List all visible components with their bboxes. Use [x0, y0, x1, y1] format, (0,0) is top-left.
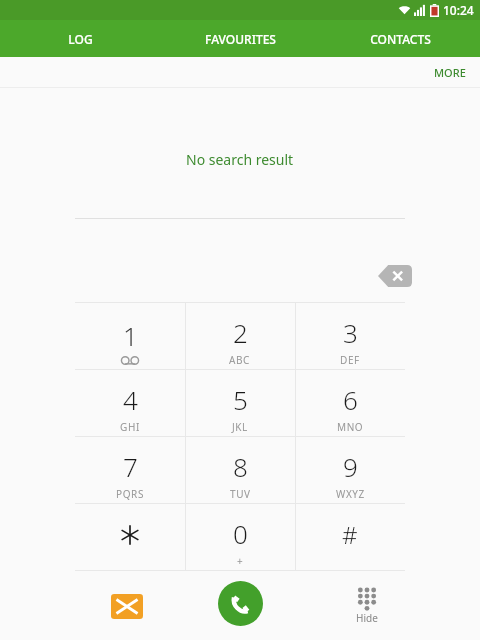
- staticText: 9: [343, 449, 358, 484]
- button[interactable]: 8: [185, 437, 295, 503]
- button[interactable]: 0: [185, 504, 295, 570]
- button[interactable]: CONTACTS: [320, 20, 480, 57]
- button[interactable]: 5: [185, 370, 295, 436]
- staticText: JKL: [232, 420, 248, 434]
- staticText: 10:24: [443, 2, 474, 18]
- staticText: MNO: [337, 420, 364, 434]
- staticText: LOG: [68, 31, 93, 47]
- button[interactable]: [75, 504, 185, 570]
- staticText: +: [237, 554, 244, 568]
- staticText: #: [342, 518, 358, 551]
- staticText: 5: [233, 382, 248, 417]
- staticText: 8: [233, 449, 248, 484]
- staticText: 2: [233, 315, 248, 350]
- staticText: WXYZ: [336, 487, 365, 501]
- button[interactable]: 4: [75, 370, 185, 436]
- button[interactable]: FAVOURITES: [160, 20, 320, 57]
- staticText: No search result: [186, 150, 294, 169]
- staticText: PQRS: [116, 487, 144, 501]
- staticText: TUV: [230, 487, 251, 501]
- button[interactable]: Call: [218, 581, 263, 626]
- button[interactable]: Message: [104, 583, 150, 629]
- staticText: 6: [343, 382, 358, 417]
- staticText: 3: [343, 315, 358, 350]
- button[interactable]: #: [295, 504, 405, 570]
- staticText: 0: [233, 516, 248, 551]
- staticText: 4: [123, 382, 138, 417]
- button[interactable]: MORE: [420, 57, 480, 88]
- button[interactable]: Hide: [352, 584, 382, 629]
- button[interactable]: LOG: [0, 20, 160, 57]
- button[interactable]: 6: [295, 370, 405, 436]
- button[interactable]: 7: [75, 437, 185, 503]
- button[interactable]: 3: [295, 303, 405, 369]
- staticText: GHI: [120, 420, 140, 434]
- staticText: MORE: [434, 65, 466, 80]
- staticText: FAVOURITES: [205, 31, 276, 47]
- button[interactable]: Backspace: [378, 265, 412, 287]
- staticText: DEF: [340, 353, 360, 367]
- button[interactable]: 1: [75, 303, 185, 369]
- staticText: Hide: [356, 611, 378, 625]
- button[interactable]: 9: [295, 437, 405, 503]
- staticText: 1: [123, 318, 138, 353]
- staticText: 7: [123, 449, 138, 484]
- staticText: ABC: [229, 353, 251, 367]
- button[interactable]: 2: [185, 303, 295, 369]
- staticText: CONTACTS: [370, 31, 431, 47]
